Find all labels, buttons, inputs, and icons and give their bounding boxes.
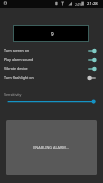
staticText: Play alarm sound — [4, 57, 34, 62]
button[interactable]: Play alarm sound — [0, 55, 103, 64]
button[interactable]: Sensitivity slider — [0, 98, 103, 105]
button[interactable]: Vibrate device — [0, 64, 103, 73]
staticText: Turn flashlight on — [4, 75, 34, 80]
staticText: 21:28 — [87, 1, 98, 7]
button[interactable]: Turn screen on — [0, 46, 103, 55]
staticText: 24% — [75, 2, 83, 7]
button[interactable]: ENABLING ALARM... — [6, 120, 97, 175]
button[interactable]: Turn flashlight on — [0, 73, 103, 82]
staticText: 9 — [51, 31, 54, 37]
staticText: Sensitivity — [4, 92, 22, 97]
staticText: Vibrate device — [4, 66, 28, 71]
staticText: Turn screen on — [4, 48, 30, 53]
staticText: ENABLING ALARM... — [33, 145, 69, 150]
